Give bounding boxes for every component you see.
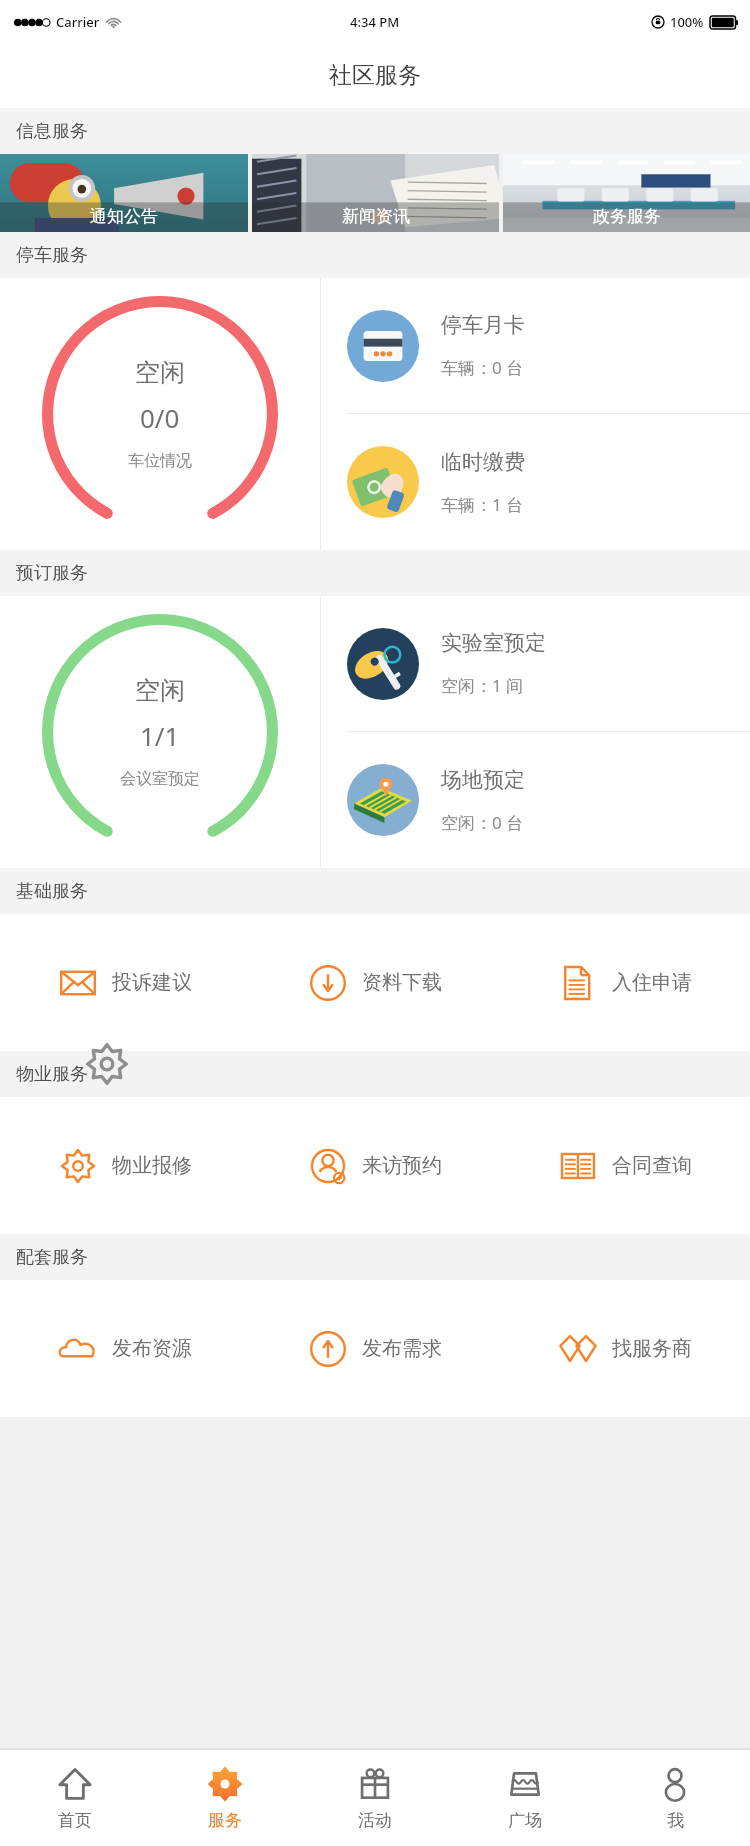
- staticText: 来访预约: [362, 1153, 442, 1178]
- staticText: 找服务商: [612, 1336, 692, 1361]
- button[interactable]: 服务: [150, 1750, 300, 1846]
- button[interactable]: 来访预约: [250, 1097, 500, 1234]
- staticText: 4:34 PM: [350, 13, 400, 31]
- staticText: 首页: [58, 1810, 92, 1831]
- button[interactable]: 活动: [300, 1750, 450, 1846]
- button[interactable]: 物业报修: [0, 1097, 250, 1234]
- staticText: 场地预定: [441, 767, 525, 793]
- button[interactable]: 场地预定: [321, 732, 750, 868]
- staticText: 车辆：0 台: [441, 356, 524, 379]
- staticText: 预订服务: [16, 562, 88, 585]
- staticText: Carrier: [56, 13, 100, 31]
- button[interactable]: 资料下载: [250, 914, 500, 1051]
- button[interactable]: 空闲: [0, 596, 320, 868]
- staticText: 车位情况: [128, 451, 192, 471]
- staticText: 入住申请: [612, 970, 692, 995]
- staticText: 社区服务: [329, 61, 421, 90]
- button[interactable]: 我: [600, 1750, 750, 1846]
- staticText: 空闲：1 间: [441, 674, 524, 697]
- button[interactable]: 新闻资讯: [252, 154, 499, 232]
- staticText: 车辆：1 台: [441, 493, 524, 516]
- staticText: 临时缴费: [441, 449, 525, 475]
- button[interactable]: 发布资源: [0, 1280, 250, 1417]
- staticText: 我: [667, 1810, 684, 1831]
- button[interactable]: 找服务商: [500, 1280, 750, 1417]
- button[interactable]: 临时缴费: [321, 414, 750, 550]
- staticText: 100%: [670, 13, 704, 31]
- button[interactable]: 广场: [450, 1750, 600, 1846]
- staticText: 活动: [358, 1810, 392, 1831]
- button[interactable]: 通知公告: [0, 154, 248, 232]
- staticText: 合同查询: [612, 1153, 692, 1178]
- staticText: 信息服务: [16, 120, 88, 143]
- staticText: 配套服务: [16, 1246, 88, 1269]
- staticText: 空闲: [135, 357, 185, 388]
- staticText: 空闲: [135, 675, 185, 706]
- staticText: 实验室预定: [441, 630, 546, 656]
- staticText: 政务服务: [593, 206, 661, 227]
- staticText: 广场: [508, 1810, 542, 1831]
- button[interactable]: 入住申请: [500, 914, 750, 1051]
- staticText: 服务: [208, 1810, 242, 1831]
- staticText: 物业服务: [16, 1063, 88, 1086]
- staticText: 会议室预定: [120, 769, 200, 789]
- staticText: 空闲：0 台: [441, 811, 524, 834]
- staticText: 0/0: [140, 400, 180, 435]
- button[interactable]: 首页: [0, 1750, 150, 1846]
- button[interactable]: 发布需求: [250, 1280, 500, 1417]
- staticText: 物业报修: [112, 1153, 192, 1178]
- button[interactable]: 政务服务: [503, 154, 750, 232]
- staticText: 通知公告: [90, 206, 158, 227]
- staticText: 基础服务: [16, 880, 88, 903]
- staticText: 停车服务: [16, 244, 88, 267]
- button[interactable]: 投诉建议: [0, 914, 250, 1051]
- staticText: 新闻资讯: [342, 206, 410, 227]
- staticText: 投诉建议: [112, 970, 192, 995]
- button[interactable]: 合同查询: [500, 1097, 750, 1234]
- button[interactable]: 实验室预定: [321, 596, 750, 731]
- button[interactable]: 停车月卡: [321, 278, 750, 413]
- staticText: 发布需求: [362, 1336, 442, 1361]
- button[interactable]: 空闲: [0, 278, 320, 550]
- staticText: 停车月卡: [441, 312, 525, 338]
- staticText: 资料下载: [362, 970, 442, 995]
- staticText: 1/1: [140, 718, 180, 753]
- staticText: 发布资源: [112, 1336, 192, 1361]
